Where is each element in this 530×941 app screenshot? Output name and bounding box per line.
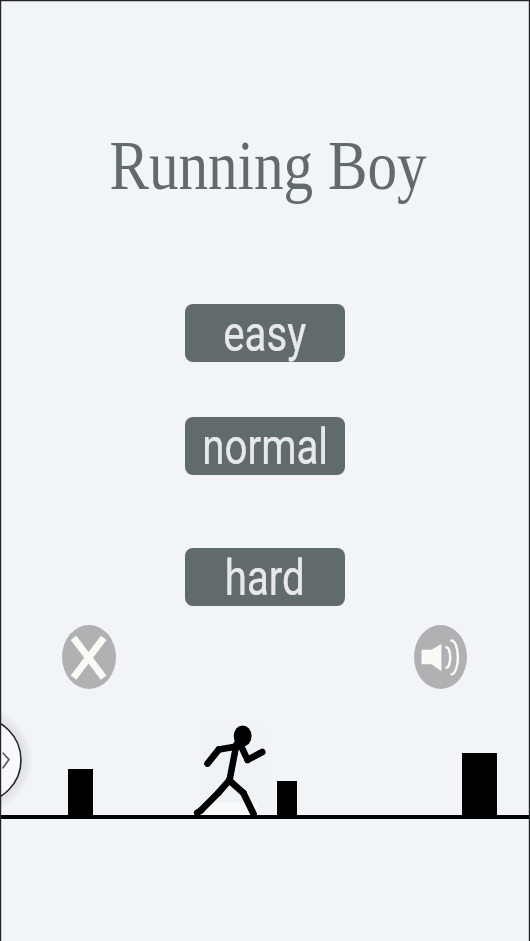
staticText: easy (223, 305, 307, 362)
staticText: Running Boy (109, 128, 427, 204)
staticText: normal (202, 418, 329, 475)
staticText: hard (225, 549, 305, 606)
button[interactable]: Sound on (414, 625, 467, 689)
button[interactable]: Close (62, 625, 116, 689)
button[interactable]: hard (185, 548, 345, 606)
button[interactable]: normal (185, 417, 345, 475)
button[interactable]: easy (185, 304, 345, 362)
